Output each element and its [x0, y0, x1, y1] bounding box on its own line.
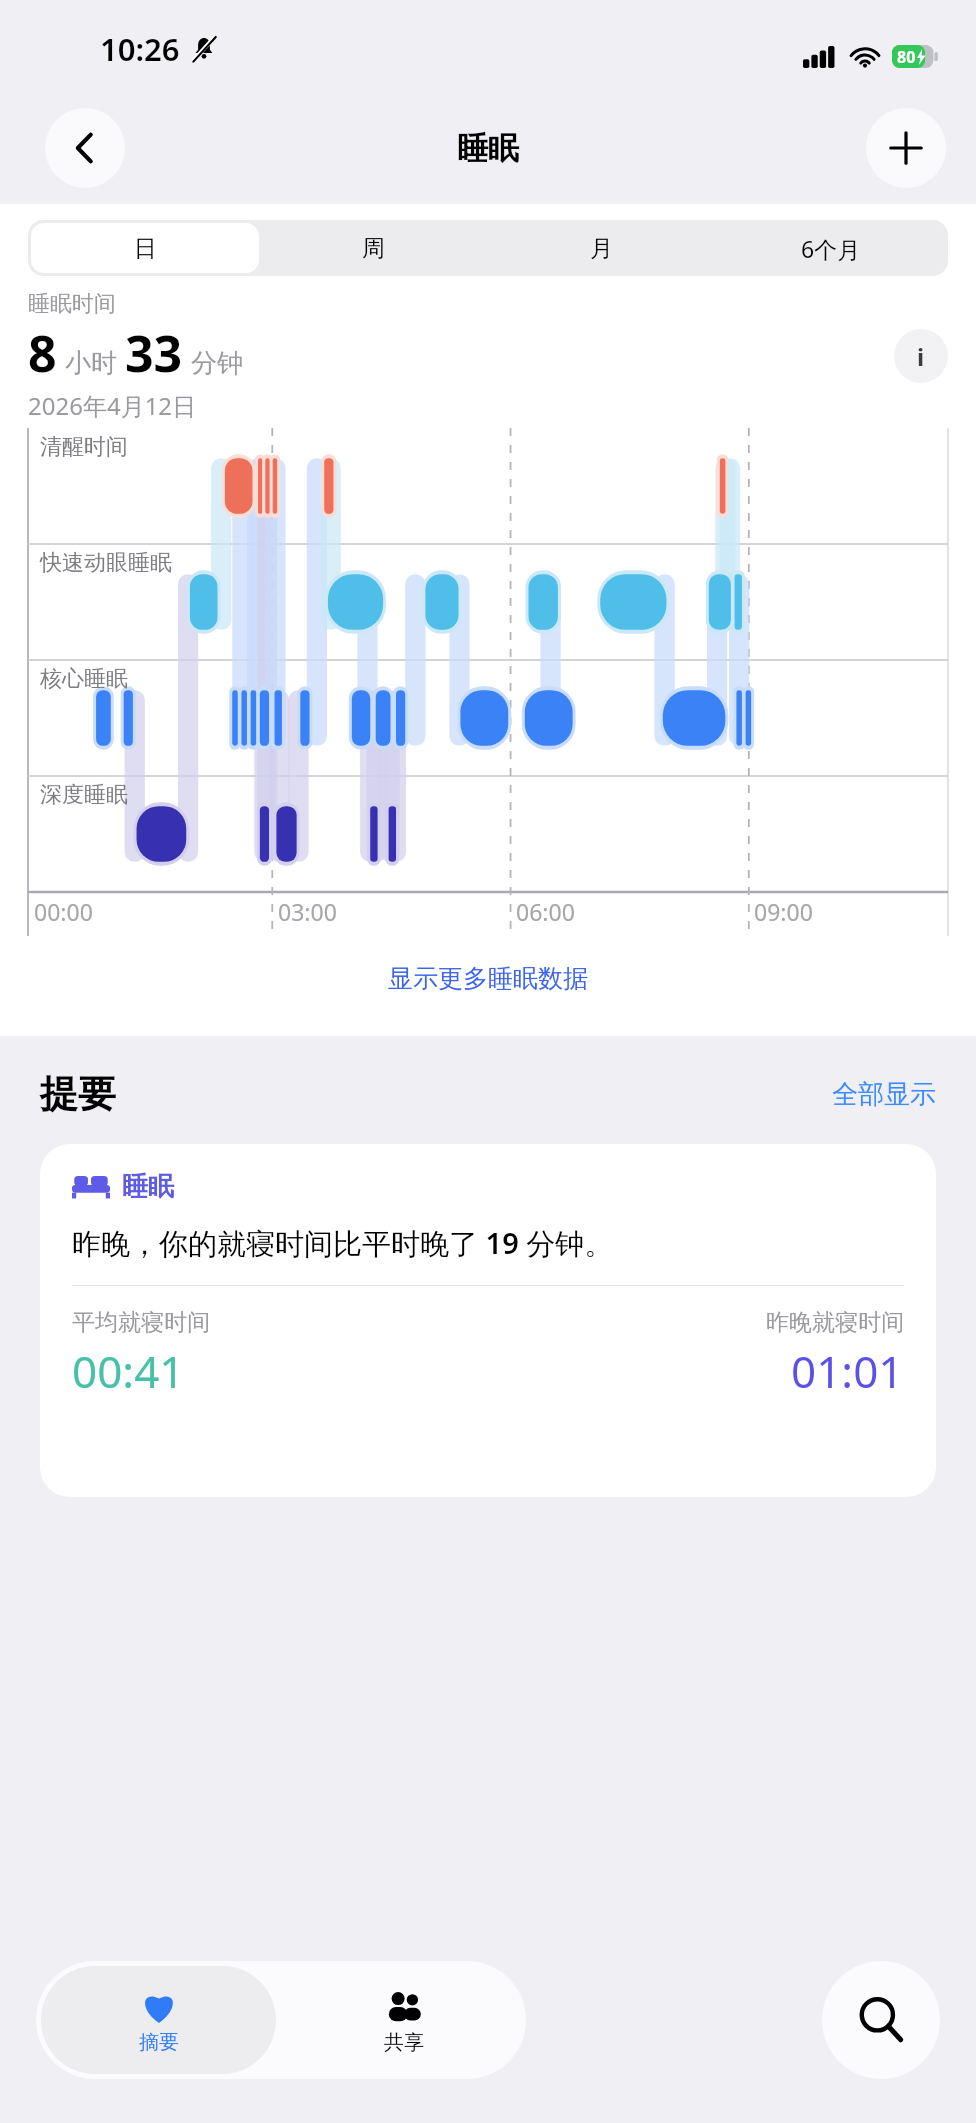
button[interactable]: Search [822, 1961, 940, 2079]
button[interactable]: 月 [487, 223, 716, 273]
staticText: 睡眠时间 [28, 290, 116, 318]
staticText: 深度睡眠 [40, 781, 128, 809]
staticText: 提要 [40, 1070, 116, 1118]
staticText: 昨晚，你的就寝时间比平时晚了 19 分钟。 [72, 1223, 614, 1263]
staticText: 80 [897, 46, 916, 68]
staticText: 分钟 [191, 347, 243, 380]
staticText: 摘要 [139, 2030, 179, 2055]
button[interactable]: Info [894, 329, 948, 383]
staticText: 昨晚就寝时间 [766, 1308, 904, 1337]
staticText: 09:00 [754, 896, 813, 927]
staticText: 小时 [65, 347, 117, 380]
staticText: 8 [28, 319, 57, 387]
staticText: 核心睡眠 [40, 665, 128, 693]
button[interactable]: Add [866, 108, 946, 188]
staticText: 2026年4月12日 [28, 389, 197, 422]
button[interactable]: 日 [31, 223, 259, 273]
button[interactable]: 6个月 [716, 223, 945, 273]
button[interactable]: 睡眠 [40, 1144, 936, 1497]
staticText: 全部显示 [832, 1078, 936, 1111]
staticText: 日 [134, 234, 157, 263]
staticText: 月 [590, 234, 613, 263]
staticText: i [917, 340, 925, 373]
staticText: 00:00 [34, 896, 93, 927]
button[interactable]: 全部显示 [832, 1078, 936, 1111]
button[interactable]: 显示更多睡眠数据 [0, 954, 976, 1002]
staticText: 周 [362, 234, 385, 263]
staticText: 00:41 [72, 1341, 185, 1401]
staticText: 平均就寝时间 [72, 1308, 210, 1337]
button[interactable]: Back [45, 108, 125, 188]
staticText: 清醒时间 [40, 433, 128, 461]
staticText: 睡眠 [457, 129, 519, 168]
button[interactable]: 周 [259, 223, 487, 273]
staticText: 显示更多睡眠数据 [388, 963, 588, 994]
staticText: 33 [125, 319, 183, 387]
staticText: 06:00 [516, 896, 575, 927]
button[interactable]: 共享 [281, 1961, 526, 2079]
staticText: 01:01 [791, 1341, 904, 1401]
staticText: 共享 [384, 2030, 424, 2055]
button[interactable]: 摘要 [41, 1966, 276, 2074]
staticText: 快速动眼睡眠 [40, 549, 172, 577]
staticText: 睡眠 [122, 1170, 174, 1203]
staticText: 6个月 [801, 233, 861, 264]
staticText: 10:26 [100, 28, 180, 70]
staticText: 03:00 [278, 896, 337, 927]
